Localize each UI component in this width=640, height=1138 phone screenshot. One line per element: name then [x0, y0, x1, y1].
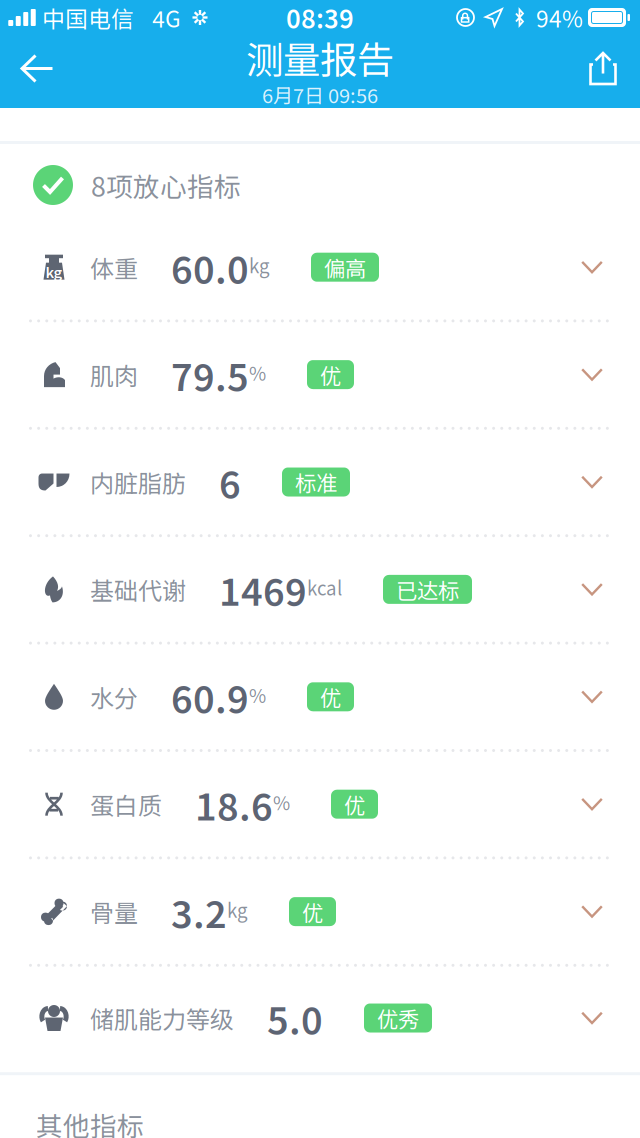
staticText: 优 [320, 681, 341, 712]
staticText: % [249, 681, 266, 708]
button[interactable]: kg [0, 215, 640, 322]
staticText: 优 [344, 789, 365, 820]
staticText: kcal [307, 574, 342, 601]
button[interactable]: 蛋白质 [0, 752, 640, 859]
staticText: 18.6 [195, 777, 273, 831]
staticText: 3.2 [171, 885, 227, 939]
staticText: 08:39 [286, 0, 354, 36]
button[interactable]: 基础代谢 [0, 537, 640, 645]
button[interactable]: 内脏脂肪 [0, 430, 640, 537]
staticText: 优 [320, 359, 341, 390]
button[interactable]: 水分 [0, 645, 640, 752]
staticText: 8项放心指标 [91, 166, 241, 204]
staticText: % [273, 789, 290, 816]
staticText: 储肌能力等级 [90, 1001, 234, 1035]
staticText: % [249, 359, 266, 386]
staticText: 中国电信 [42, 1, 134, 34]
staticText: 1469 [219, 562, 307, 616]
staticText: 骨量 [90, 894, 138, 929]
staticText: 4G [152, 1, 181, 34]
staticText: 优 [302, 896, 323, 927]
staticText: 优秀 [377, 1003, 419, 1033]
staticText: 偏高 [324, 252, 366, 283]
staticText: 测量报告 [246, 30, 394, 85]
staticText: 其他指标 [36, 1105, 144, 1138]
staticText: 6月7日 09:56 [262, 80, 378, 109]
staticText: 已达标 [396, 574, 459, 605]
staticText: 6 [219, 455, 241, 509]
staticText: 体重 [90, 250, 138, 285]
button[interactable]: 肌肉 [0, 322, 640, 430]
staticText: 内脏脂肪 [90, 465, 186, 499]
button[interactable]: 储肌能力等级 [0, 967, 640, 1072]
staticText: 基础代谢 [90, 572, 186, 607]
staticText: kg [45, 261, 62, 282]
staticText: 肌肉 [90, 357, 138, 392]
staticText: 标准 [295, 467, 337, 497]
staticText: 60.9 [171, 670, 249, 724]
staticText: 60.0 [171, 240, 249, 294]
staticText: 蛋白质 [90, 787, 162, 822]
staticText: kg [249, 252, 270, 279]
button[interactable]: Back [4, 38, 70, 98]
staticText: 94% [536, 1, 583, 34]
button[interactable]: 骨量 [0, 859, 640, 967]
staticText: kg [227, 896, 248, 923]
staticText: 水分 [90, 679, 138, 714]
staticText: 5.0 [267, 991, 323, 1045]
staticText: 79.5 [171, 348, 249, 402]
button[interactable]: Share [570, 38, 636, 98]
